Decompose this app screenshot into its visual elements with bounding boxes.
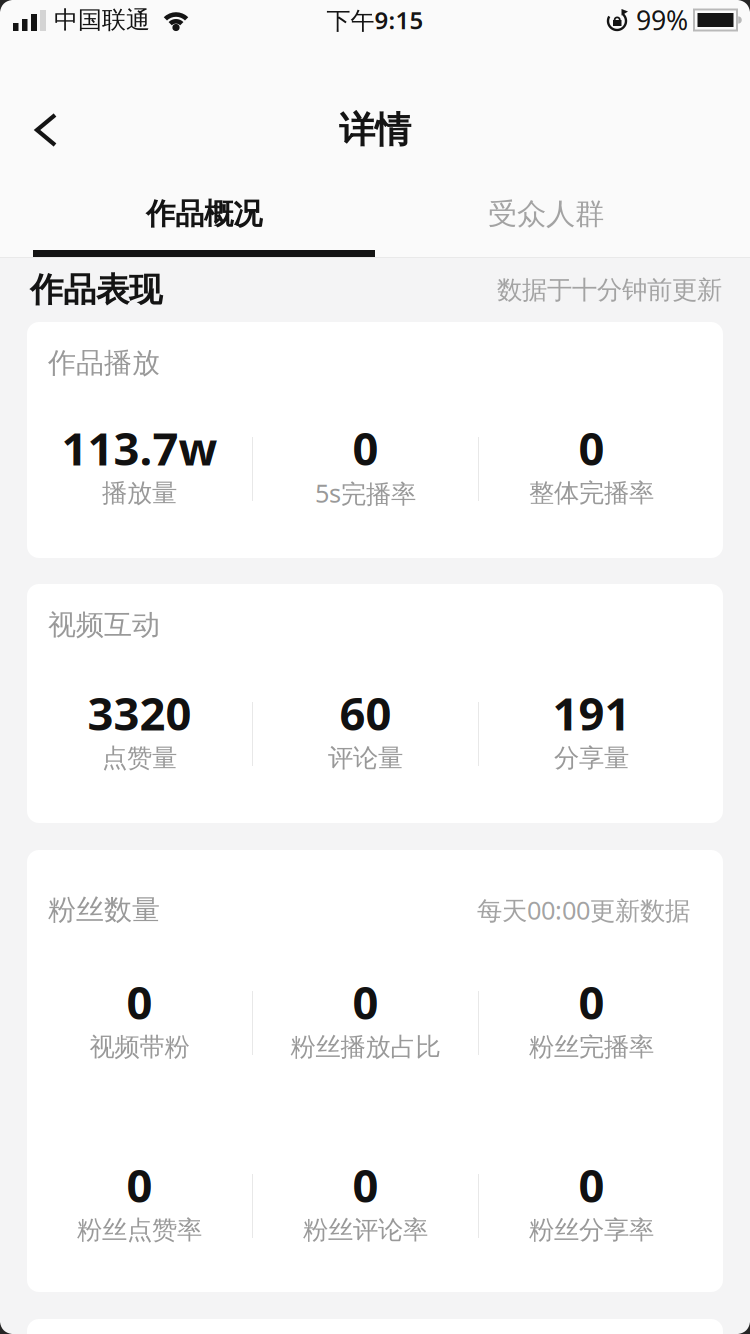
staticText: 视频互动: [48, 608, 160, 642]
staticText: 粉丝点赞率: [77, 1214, 202, 1245]
staticText: 60: [339, 683, 391, 743]
button[interactable]: 受众人群: [375, 199, 717, 229]
staticText: 99%: [636, 2, 688, 38]
staticText: 数据于十分钟前更新: [497, 274, 722, 305]
staticText: 作品播放: [48, 346, 160, 380]
staticText: 作品概况: [146, 196, 262, 232]
staticText: 整体完播率: [529, 477, 654, 508]
staticText: 详情: [339, 108, 411, 152]
button[interactable]: 作品概况: [33, 199, 375, 229]
staticText: 每天00:00更新数据: [477, 893, 690, 927]
staticText: 0: [352, 972, 378, 1032]
staticText: 下午9:15: [326, 4, 423, 36]
staticText: 视频带粉: [89, 1031, 189, 1062]
staticText: 0: [578, 972, 604, 1032]
staticText: 点赞量: [102, 742, 177, 773]
staticText: 分享量: [554, 742, 629, 773]
staticText: 0: [352, 418, 378, 478]
staticText: 113.7w: [61, 418, 217, 478]
staticText: 3320: [87, 683, 191, 743]
staticText: 0: [352, 1155, 378, 1215]
staticText: 受众人群: [488, 196, 604, 232]
staticText: 191: [552, 683, 630, 743]
staticText: 粉丝数量: [48, 893, 160, 927]
staticText: 中国联通: [54, 5, 150, 35]
button[interactable]: 返回: [0, 113, 58, 147]
staticText: 5s完播率: [315, 476, 416, 510]
staticText: 0: [126, 1155, 152, 1215]
staticText: 0: [126, 972, 152, 1032]
staticText: 粉丝完播率: [529, 1031, 654, 1062]
staticText: 粉丝评论率: [303, 1214, 428, 1245]
staticText: 0: [578, 418, 604, 478]
staticText: 作品表现: [30, 269, 162, 310]
staticText: 0: [578, 1155, 604, 1215]
staticText: 评论量: [328, 742, 403, 773]
staticText: 播放量: [102, 477, 177, 508]
staticText: 粉丝分享率: [529, 1214, 654, 1245]
staticText: 粉丝播放占比: [290, 1031, 440, 1062]
